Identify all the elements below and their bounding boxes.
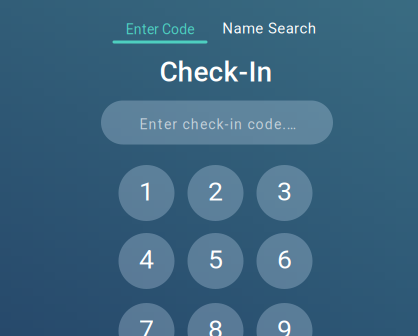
button[interactable]: 2 [187,165,243,221]
button[interactable]: 6 [256,233,312,289]
staticText: 1 [139,176,154,207]
button[interactable]: 5 [187,233,243,289]
staticText: 4 [139,244,154,275]
staticText: 5 [208,244,223,275]
button[interactable]: 7 [118,303,174,336]
staticText: 2 [208,176,223,207]
button[interactable]: Enter Code [109,15,211,47]
staticText: 3 [277,176,292,207]
button[interactable]: 1 [118,165,174,221]
button[interactable]: 9 [256,303,312,336]
button[interactable]: Enter check-in code... [101,100,333,144]
button[interactable]: Name Search [209,12,329,44]
staticText: Enter check-in code... [139,116,297,133]
button[interactable]: 4 [118,233,174,289]
button[interactable]: 8 [187,303,243,336]
staticText: Enter Code [126,21,194,38]
staticText: 9 [277,314,292,336]
staticText: Name Search [222,20,316,37]
staticText: Check-In [159,56,272,88]
staticText: 6 [277,244,292,275]
staticText: 8 [208,314,223,336]
button[interactable]: 3 [256,165,312,221]
staticText: 7 [139,314,154,336]
